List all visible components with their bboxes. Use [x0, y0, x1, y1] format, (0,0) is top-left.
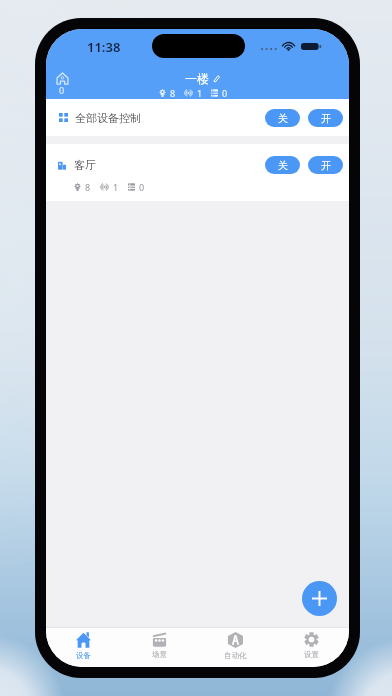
- staticText: 11:38: [87, 38, 121, 56]
- button[interactable]: 一楼: [185, 71, 220, 86]
- button[interactable]: 自动化: [197, 627, 273, 667]
- button[interactable]: 客厅: [46, 144, 349, 201]
- staticText: 自动化: [224, 651, 247, 660]
- staticText: 场景: [152, 650, 167, 659]
- staticText: 1: [113, 181, 119, 192]
- staticText: 0: [222, 87, 228, 99]
- staticText: 设备: [76, 651, 91, 660]
- button[interactable]: 关: [265, 156, 300, 174]
- button[interactable]: 关: [265, 109, 300, 127]
- button[interactable]: Home: [50, 70, 76, 96]
- staticText: 0: [59, 84, 65, 96]
- button[interactable]: 设置: [273, 627, 349, 667]
- staticText: 设置: [304, 650, 319, 659]
- staticText: 一楼: [185, 71, 209, 86]
- staticText: 1: [197, 87, 203, 99]
- button[interactable]: 开: [308, 156, 343, 174]
- button[interactable]: 场景: [121, 627, 197, 667]
- button[interactable]: 设备: [46, 627, 121, 667]
- staticText: 关: [278, 112, 288, 125]
- staticText: 全部设备控制: [75, 111, 141, 125]
- staticText: 8: [85, 181, 91, 192]
- button[interactable]: 全部设备控制: [46, 99, 349, 136]
- staticText: 8: [170, 87, 176, 99]
- button[interactable]: 开: [308, 109, 343, 127]
- staticText: 关: [278, 159, 288, 172]
- staticText: 开: [321, 112, 331, 125]
- button[interactable]: Add: [302, 581, 337, 616]
- staticText: 0: [139, 181, 145, 192]
- staticText: 客厅: [74, 158, 96, 172]
- staticText: 开: [321, 159, 331, 172]
